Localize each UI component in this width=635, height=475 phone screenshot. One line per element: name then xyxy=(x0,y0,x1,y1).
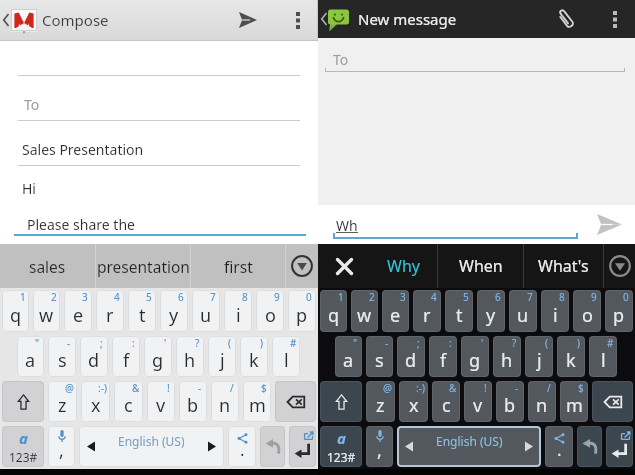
button[interactable]: Shift xyxy=(320,381,362,422)
button[interactable]: Expand suggestions xyxy=(604,244,635,288)
button[interactable]: # xyxy=(589,336,617,377)
button[interactable]: Clear suggestion xyxy=(318,244,437,288)
button[interactable]: ! xyxy=(147,381,175,422)
staticText: t xyxy=(456,303,463,328)
button[interactable]: Expand suggestions xyxy=(286,244,318,288)
button[interactable]: More options xyxy=(594,0,635,38)
button[interactable]: 5 xyxy=(128,290,156,332)
staticText: 6 xyxy=(495,290,501,304)
staticText: f xyxy=(123,348,130,373)
button[interactable]: ? xyxy=(176,336,204,377)
button[interactable]: 7 xyxy=(509,290,537,332)
button[interactable]: 0 xyxy=(605,290,633,332)
button[interactable]: 7 xyxy=(192,290,220,332)
button[interactable]: 9 xyxy=(256,290,284,332)
button[interactable]: 8 xyxy=(224,290,252,332)
button[interactable]: Backspace xyxy=(275,381,316,422)
button[interactable]: 2 xyxy=(351,290,378,332)
button[interactable]: 8 xyxy=(541,290,569,332)
button[interactable]: Period, share xyxy=(228,426,256,467)
button[interactable]: When xyxy=(438,244,523,288)
button[interactable]: & xyxy=(114,381,143,422)
button[interactable]: Symbols xyxy=(2,426,44,467)
button[interactable]: Space, English (US) xyxy=(79,426,224,467)
button[interactable]: ! xyxy=(464,381,492,422)
button[interactable]: & xyxy=(432,381,460,422)
button[interactable]: ' xyxy=(144,336,172,377)
button[interactable]: ' xyxy=(461,336,489,377)
staticText: , xyxy=(377,438,382,463)
staticText: h xyxy=(184,348,196,373)
button[interactable]: 4 xyxy=(413,290,441,332)
staticText: ) xyxy=(577,336,580,350)
button[interactable]: :-) xyxy=(81,381,110,422)
button[interactable]: 6 xyxy=(477,290,505,332)
button[interactable]: Enter xyxy=(606,426,633,467)
button[interactable]: / xyxy=(211,381,239,422)
button[interactable]: - xyxy=(48,336,76,377)
button[interactable]: Symbols xyxy=(320,426,362,467)
button[interactable]: " xyxy=(17,336,44,377)
button[interactable]: : xyxy=(112,336,140,377)
staticText: . xyxy=(557,438,562,461)
staticText: w xyxy=(39,303,54,328)
button[interactable]: @ xyxy=(366,381,395,422)
button[interactable]: Shift xyxy=(2,381,44,422)
staticText: When xyxy=(459,255,503,277)
button[interactable]: Send xyxy=(584,205,634,244)
button[interactable]: Undo xyxy=(260,426,285,467)
staticText: ; xyxy=(417,336,420,350)
button[interactable]: - xyxy=(366,336,393,377)
staticText: d xyxy=(88,348,100,373)
button[interactable]: :-) xyxy=(399,381,428,422)
button[interactable]: first xyxy=(191,244,285,288)
button[interactable]: Backspace xyxy=(592,381,633,422)
button[interactable]: 0 xyxy=(288,290,316,332)
button[interactable]: sales xyxy=(0,244,95,288)
button[interactable]: - xyxy=(179,381,207,422)
button[interactable]: 9 xyxy=(573,290,601,332)
button[interactable]: What's xyxy=(524,244,603,288)
button[interactable]: 5 xyxy=(445,290,473,332)
staticText: ( xyxy=(228,336,231,350)
button[interactable]: presentation xyxy=(96,244,190,288)
button[interactable]: 2 xyxy=(33,290,60,332)
button[interactable]: Space, English (US) xyxy=(397,426,541,467)
button[interactable]: " xyxy=(335,336,362,377)
button[interactable]: Back xyxy=(318,0,356,38)
button[interactable]: $ xyxy=(560,381,588,422)
button[interactable]: 4 xyxy=(96,290,124,332)
button[interactable]: ; xyxy=(80,336,108,377)
button[interactable]: Back xyxy=(0,0,40,40)
staticText: 2 xyxy=(369,290,375,304)
button[interactable]: Undo xyxy=(577,426,602,467)
button[interactable]: - xyxy=(496,381,524,422)
button[interactable]: More options xyxy=(278,0,318,40)
button[interactable]: : xyxy=(429,336,457,377)
button[interactable]: , xyxy=(48,426,75,467)
button[interactable]: Attach xyxy=(544,0,588,38)
button[interactable]: 1 xyxy=(2,290,29,332)
staticText: 4 xyxy=(431,290,437,304)
button[interactable]: ? xyxy=(493,336,521,377)
button[interactable]: Send xyxy=(222,0,274,40)
button[interactable]: / xyxy=(528,381,556,422)
button[interactable]: 3 xyxy=(64,290,92,332)
button[interactable]: ( xyxy=(525,336,553,377)
staticText: n xyxy=(219,393,231,418)
button[interactable]: ) xyxy=(557,336,585,377)
staticText: p xyxy=(613,303,625,328)
button[interactable]: ( xyxy=(208,336,236,377)
button[interactable]: Period, share xyxy=(545,426,573,467)
button[interactable]: @ xyxy=(48,381,77,422)
button[interactable]: 6 xyxy=(160,290,188,332)
staticText: / xyxy=(230,381,234,395)
button[interactable]: 3 xyxy=(382,290,409,332)
button[interactable]: ; xyxy=(397,336,425,377)
button[interactable]: $ xyxy=(243,381,271,422)
button[interactable]: # xyxy=(272,336,300,377)
button[interactable]: , xyxy=(366,426,393,467)
button[interactable]: Enter xyxy=(289,426,316,467)
button[interactable]: ) xyxy=(240,336,268,377)
button[interactable]: 1 xyxy=(320,290,347,332)
